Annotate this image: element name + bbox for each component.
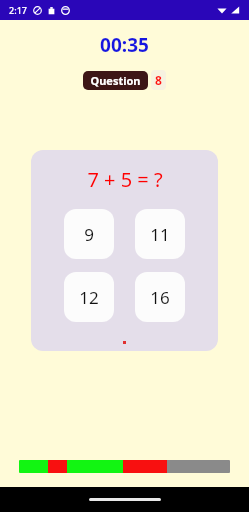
staticText: 8 [155,72,162,88]
staticText: 12 [79,286,99,309]
other: Home [89,498,161,501]
staticText: 16 [150,286,170,309]
staticText: 9 [84,223,94,246]
staticText: Question [90,73,141,88]
staticText: 11 [150,223,170,246]
button[interactable]: 12 [64,272,114,322]
button[interactable]: 11 [135,209,185,259]
button[interactable]: 16 [135,272,185,322]
button[interactable]: 9 [64,209,114,259]
staticText: 7 + 5 = ? [87,166,163,193]
button[interactable]: Question [83,71,148,90]
staticText: 00:35 [100,32,149,58]
staticText: 2:17 [9,4,27,16]
